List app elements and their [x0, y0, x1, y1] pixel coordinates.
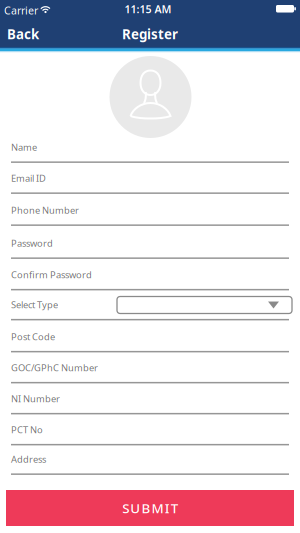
- staticText: 11:15 AM: [124, 2, 171, 16]
- staticText: Password: [11, 237, 53, 249]
- staticText: PCT No: [11, 423, 43, 436]
- staticText: NI Number: [11, 392, 60, 405]
- staticText: SUBMIT: [122, 499, 178, 517]
- staticText: Register: [122, 25, 178, 43]
- staticText: Select Type: [11, 298, 58, 311]
- staticText: Address: [11, 453, 46, 465]
- staticText: Carrier: [4, 3, 38, 17]
- staticText: Email ID: [11, 172, 46, 184]
- staticText: Post Code: [11, 330, 55, 343]
- staticText: Name: [11, 141, 37, 153]
- button[interactable]: [117, 296, 292, 313]
- button[interactable]: Back: [0, 20, 57, 48]
- staticText: Confirm Password: [11, 268, 92, 281]
- staticText: GOC/GPhC Number: [11, 361, 98, 374]
- staticText: Phone Number: [11, 204, 79, 216]
- button[interactable]: SUBMIT: [6, 490, 294, 526]
- staticText: Back: [7, 25, 39, 43]
